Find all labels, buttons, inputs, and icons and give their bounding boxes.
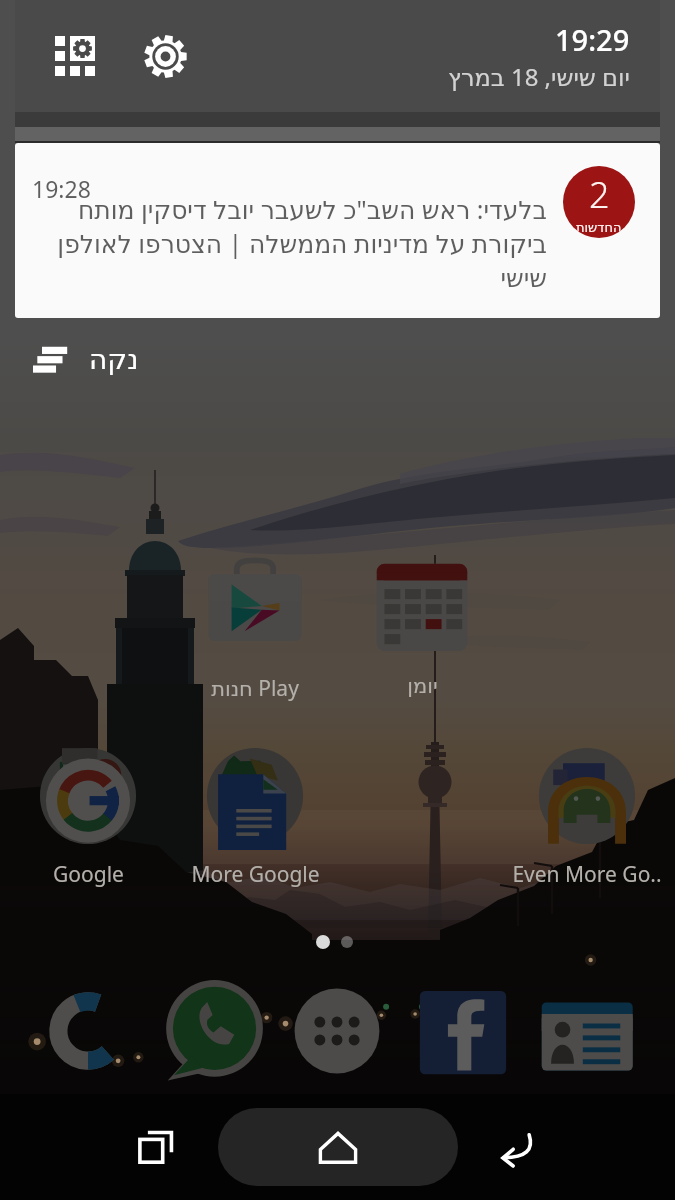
staticText: Google bbox=[53, 860, 124, 889]
staticText: Even More Go.. bbox=[512, 860, 662, 889]
button[interactable]: 19:28 bbox=[15, 143, 660, 318]
staticText: 19:28 bbox=[32, 173, 91, 204]
button[interactable]: All apps bbox=[285, 979, 389, 1083]
button[interactable]: Contacts bbox=[536, 979, 640, 1083]
button[interactable]: נקה bbox=[15, 318, 660, 400]
staticText: נקה bbox=[89, 343, 139, 376]
staticText: החדשות bbox=[576, 220, 622, 235]
staticText: 2 bbox=[589, 170, 610, 219]
button[interactable]: Home bbox=[218, 1108, 458, 1186]
button[interactable]: More Google bbox=[172, 744, 338, 894]
button[interactable]: Edit quick settings bbox=[45, 26, 105, 86]
staticText: 19:29 bbox=[555, 20, 630, 59]
button[interactable]: Google bbox=[5, 744, 171, 894]
button[interactable]: חנות Play bbox=[172, 558, 338, 708]
button[interactable]: Back bbox=[485, 1115, 549, 1179]
button[interactable]: יומן bbox=[339, 558, 505, 708]
button[interactable]: Facebook bbox=[411, 979, 515, 1083]
staticText: יומן bbox=[407, 674, 438, 698]
button[interactable]: Phone bbox=[36, 979, 140, 1083]
button[interactable]: Settings bbox=[135, 26, 195, 86]
button[interactable]: Even More Go.. bbox=[504, 744, 670, 894]
staticText: More Google bbox=[191, 860, 320, 889]
staticText: חנות Play bbox=[211, 674, 299, 703]
staticText: בלעדי: ראש השב"כ לשעבר יובל דיסקין מותח … bbox=[47, 192, 547, 293]
button[interactable]: WhatsApp bbox=[162, 979, 266, 1083]
button[interactable]: Recents bbox=[125, 1115, 189, 1179]
staticText: יום שישי, 18 במרץ bbox=[448, 60, 630, 93]
